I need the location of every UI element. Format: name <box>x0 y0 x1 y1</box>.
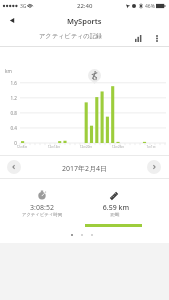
staticText: 12月20日 <box>75 145 97 149</box>
staticText: 3G <box>20 3 27 10</box>
staticText: 12月8日 <box>11 145 33 149</box>
staticText: 距離 <box>100 212 130 218</box>
staticText: アクティビティ時間 <box>0 212 84 218</box>
button[interactable]: Statistics <box>131 31 145 45</box>
button[interactable]: 6.59 km <box>84 179 169 229</box>
staticText: 1月1日 <box>140 145 162 149</box>
staticText: 1.6 <box>3 80 17 86</box>
button[interactable]: Previous day <box>7 160 21 174</box>
staticText: km <box>5 68 12 74</box>
staticText: MySports <box>67 16 102 26</box>
staticText: 0 <box>3 140 17 146</box>
staticText: 46% <box>145 3 155 10</box>
button[interactable]: More options <box>150 31 164 45</box>
staticText: 0.4 <box>3 125 17 131</box>
staticText: 6.59 km <box>86 203 146 213</box>
staticText: 12月14日 <box>43 145 65 149</box>
staticText: 0.8 <box>3 110 17 116</box>
button[interactable]: Back <box>0 12 24 30</box>
staticText: 1.2 <box>3 95 17 101</box>
staticText: アクティビティの記録 <box>39 32 103 40</box>
staticText: 22:40 <box>77 2 93 10</box>
staticText: 3:08:52 <box>0 203 84 213</box>
staticText: 12月26日 <box>107 145 129 149</box>
button[interactable]: Next day <box>147 160 161 174</box>
button[interactable]: 3:08:52 <box>0 179 84 229</box>
staticText: 2017年2月4日 <box>0 164 169 174</box>
